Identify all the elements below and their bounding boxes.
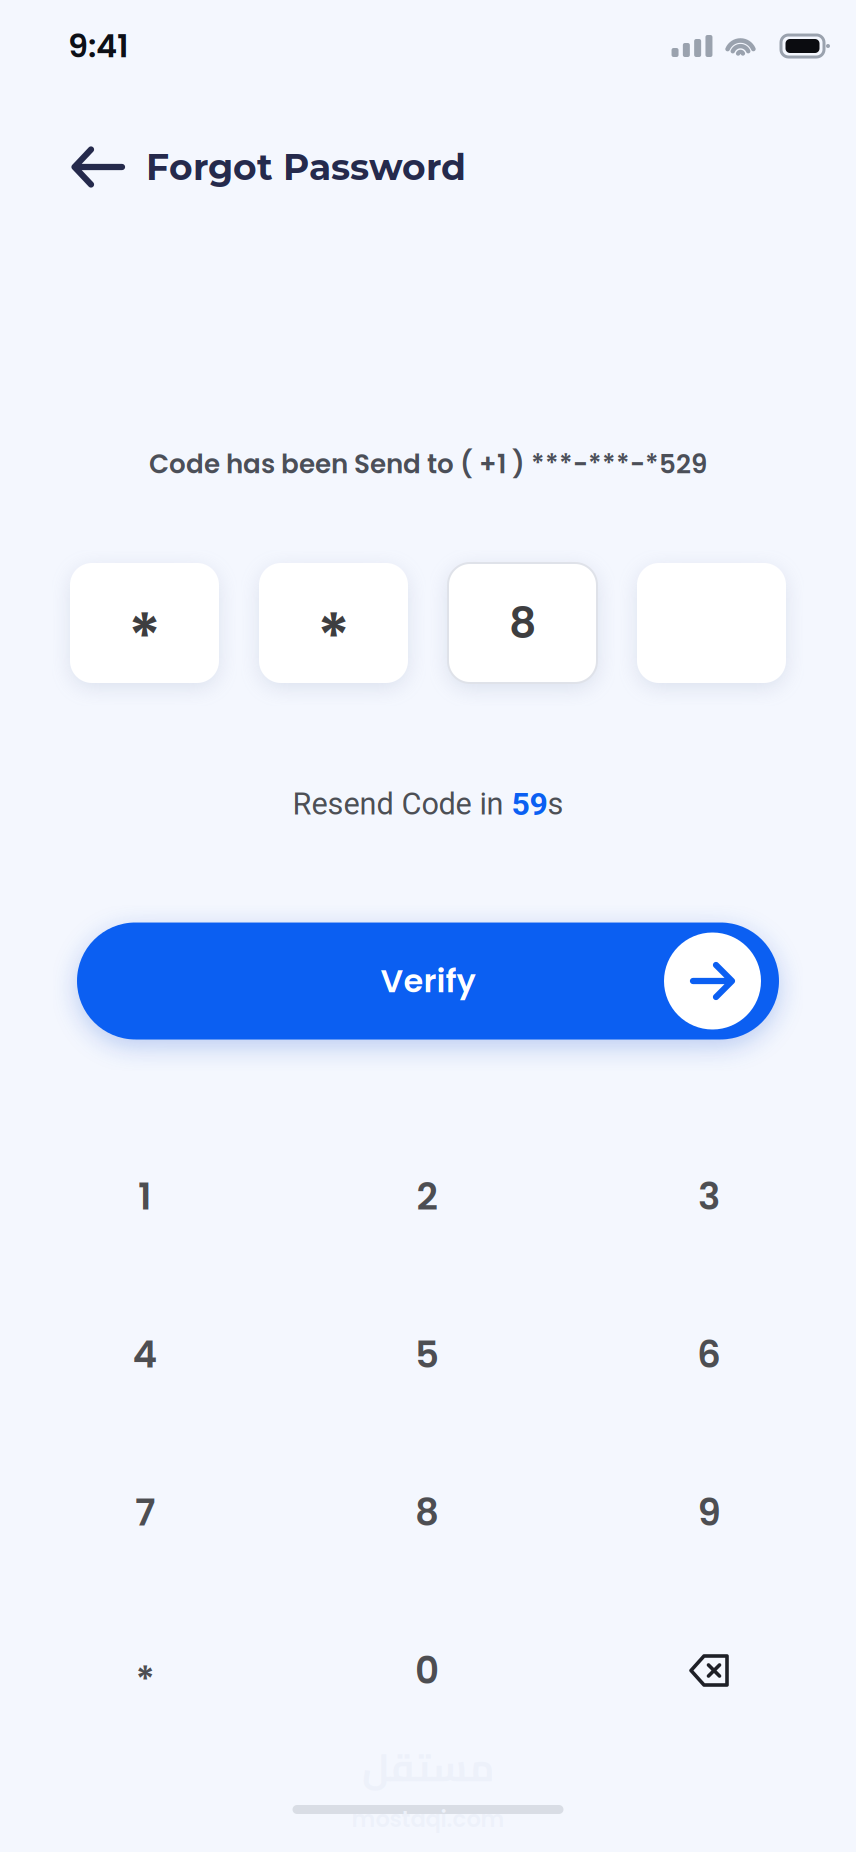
button[interactable]: Verify [77, 922, 779, 1039]
button[interactable]: 6 [568, 1275, 850, 1433]
button[interactable]: Code digit [70, 563, 219, 683]
staticText: 8 [509, 593, 536, 653]
button[interactable]: 4 [4, 1275, 286, 1433]
staticText: s [547, 786, 563, 822]
staticText: 9:41 [68, 24, 129, 68]
button[interactable]: 5 [286, 1275, 568, 1433]
staticText: 5 [415, 1328, 439, 1381]
button[interactable]: 0 [286, 1591, 568, 1749]
button[interactable]: Code digit [259, 563, 408, 683]
staticText: 0 [415, 1644, 439, 1697]
button[interactable]: Back [58, 137, 138, 197]
staticText: Verify [380, 959, 475, 1003]
staticText: * [317, 592, 350, 682]
staticText: 3 [698, 1170, 720, 1223]
staticText: 2 [416, 1170, 437, 1223]
staticText: 59 [511, 785, 547, 823]
button[interactable]: 8 [286, 1433, 568, 1591]
staticText: mostaqi.com [351, 1803, 504, 1835]
staticText: 8 [415, 1486, 439, 1539]
button[interactable]: 7 [4, 1433, 286, 1591]
staticText: 7 [135, 1486, 155, 1539]
staticText: 6 [697, 1328, 721, 1381]
button[interactable]: 2 [286, 1117, 568, 1275]
button[interactable]: 3 [568, 1117, 850, 1275]
button[interactable]: 1 [4, 1117, 286, 1275]
staticText: Forgot Password [146, 145, 466, 189]
staticText: Code has been Send to ( +1 ) ***-***-*52… [149, 446, 707, 482]
staticText: 4 [132, 1328, 157, 1381]
staticText: Resend Code in [292, 786, 511, 822]
staticText: * [135, 1653, 154, 1706]
staticText: 1 [138, 1170, 152, 1223]
button[interactable]: * [4, 1591, 286, 1749]
button[interactable]: 9 [568, 1433, 850, 1591]
staticText: * [128, 592, 161, 682]
button[interactable]: Code digit [448, 563, 597, 683]
staticText: 9 [697, 1486, 720, 1539]
button[interactable]: Delete [568, 1591, 850, 1749]
